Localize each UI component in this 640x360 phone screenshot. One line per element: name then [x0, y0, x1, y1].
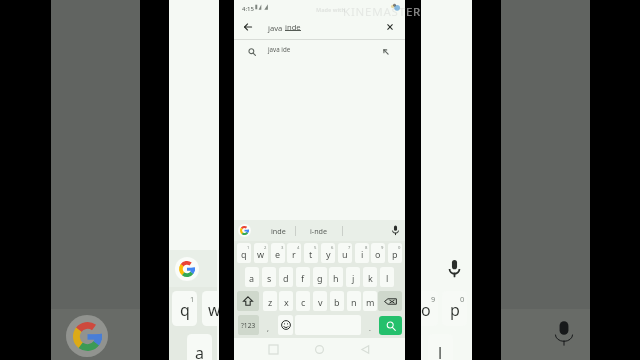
button[interactable]: ,: [260, 315, 276, 335]
staticText: 2: [264, 245, 267, 251]
button[interactable]: b: [330, 291, 344, 311]
staticText: f: [301, 272, 305, 284]
button[interactable]: h: [329, 267, 343, 287]
button[interactable]: g: [313, 267, 327, 287]
staticText: p: [392, 248, 398, 260]
staticText: d: [283, 272, 289, 284]
staticText: u: [342, 248, 348, 260]
staticText: l: [386, 272, 389, 284]
button[interactable]: i-nde: [296, 220, 342, 241]
button[interactable]: Back: [234, 15, 405, 39]
button[interactable]: z: [263, 291, 277, 311]
staticText: e: [275, 248, 281, 260]
button[interactable]: w: [254, 243, 268, 263]
button[interactable]: f: [296, 267, 310, 287]
staticText: KINEMASTER: [343, 4, 421, 20]
staticText: c: [301, 296, 306, 308]
button[interactable]: Voice input: [391, 225, 400, 235]
button[interactable]: q: [172, 291, 197, 326]
button[interactable]: inde: [261, 220, 295, 241]
button[interactable]: t: [304, 243, 318, 263]
button[interactable]: inde: [215, 250, 219, 287]
button[interactable]: java ide: [234, 40, 405, 64]
staticText: t: [309, 248, 313, 260]
staticText: a: [195, 342, 204, 360]
staticText: 0: [460, 294, 465, 304]
staticText: x: [284, 296, 289, 308]
button[interactable]: Clear: [380, 15, 400, 39]
staticText: ,: [267, 324, 269, 334]
button[interactable]: y: [321, 243, 335, 263]
staticText: KINEMASTER: [343, 4, 421, 20]
button[interactable]: Voice input: [447, 259, 462, 277]
staticText: 1: [190, 294, 195, 304]
staticText: v: [318, 296, 323, 308]
button[interactable]: a: [245, 267, 259, 287]
staticText: q: [180, 299, 190, 321]
button[interactable]: j: [346, 267, 360, 287]
staticText: l: [438, 342, 443, 360]
button[interactable]: Google: [238, 224, 251, 237]
button[interactable]: Back: [236, 15, 260, 39]
staticText: 6: [331, 245, 334, 251]
button[interactable]: w: [202, 291, 219, 326]
staticText: b: [334, 296, 340, 308]
button[interactable]: x: [279, 291, 293, 311]
button[interactable]: l: [428, 334, 453, 360]
button[interactable]: Emoji: [278, 315, 293, 335]
staticText: j: [352, 272, 355, 284]
button[interactable]: s: [262, 267, 276, 287]
button[interactable]: u: [338, 243, 352, 263]
staticText: p: [450, 299, 460, 321]
staticText: a: [249, 272, 255, 284]
staticText: 4: [297, 245, 300, 251]
button[interactable]: Backspace: [378, 291, 402, 311]
staticText: inde: [285, 22, 301, 32]
staticText: 8: [365, 245, 368, 251]
staticText: y: [326, 248, 331, 260]
staticText: 1: [247, 245, 250, 251]
staticText: r: [292, 248, 296, 260]
staticText: .: [369, 324, 371, 334]
staticText: m: [366, 296, 375, 308]
staticText: java: [268, 23, 285, 33]
button[interactable]: k: [363, 267, 377, 287]
button[interactable]: v: [313, 291, 327, 311]
staticText: n: [351, 296, 357, 308]
button[interactable]: Shift: [237, 291, 259, 311]
staticText: z: [268, 296, 273, 308]
button[interactable]: l: [380, 267, 394, 287]
button[interactable]: m: [363, 291, 377, 311]
staticText: ?123: [241, 321, 256, 330]
button[interactable]: c: [296, 291, 310, 311]
button[interactable]: r: [287, 243, 301, 263]
button[interactable]: o: [371, 243, 385, 263]
button[interactable]: p: [442, 291, 467, 326]
button[interactable]: i: [355, 243, 369, 263]
button[interactable]: .: [362, 315, 377, 335]
button[interactable]: o: [421, 291, 438, 326]
staticText: g: [317, 272, 323, 284]
button[interactable]: d: [279, 267, 293, 287]
staticText: w: [208, 299, 219, 321]
button[interactable]: Google: [175, 257, 199, 281]
staticText: 9: [381, 245, 384, 251]
button[interactable]: n: [347, 291, 361, 311]
staticText: java ide: [268, 45, 291, 53]
staticText: 7: [348, 245, 351, 251]
staticText: h: [333, 272, 339, 284]
button[interactable]: a: [187, 334, 212, 360]
staticText: i-nde: [310, 226, 328, 236]
staticText: k: [368, 272, 373, 284]
staticText: Made with: [316, 6, 345, 13]
button[interactable]: Search: [379, 316, 402, 335]
button[interactable]: ?123: [238, 315, 259, 335]
button[interactable]: p: [388, 243, 402, 263]
button[interactable]: q: [237, 243, 251, 263]
button[interactable]: e: [271, 243, 285, 263]
staticText: inde: [271, 226, 286, 236]
staticText: 4:15: [242, 5, 254, 13]
